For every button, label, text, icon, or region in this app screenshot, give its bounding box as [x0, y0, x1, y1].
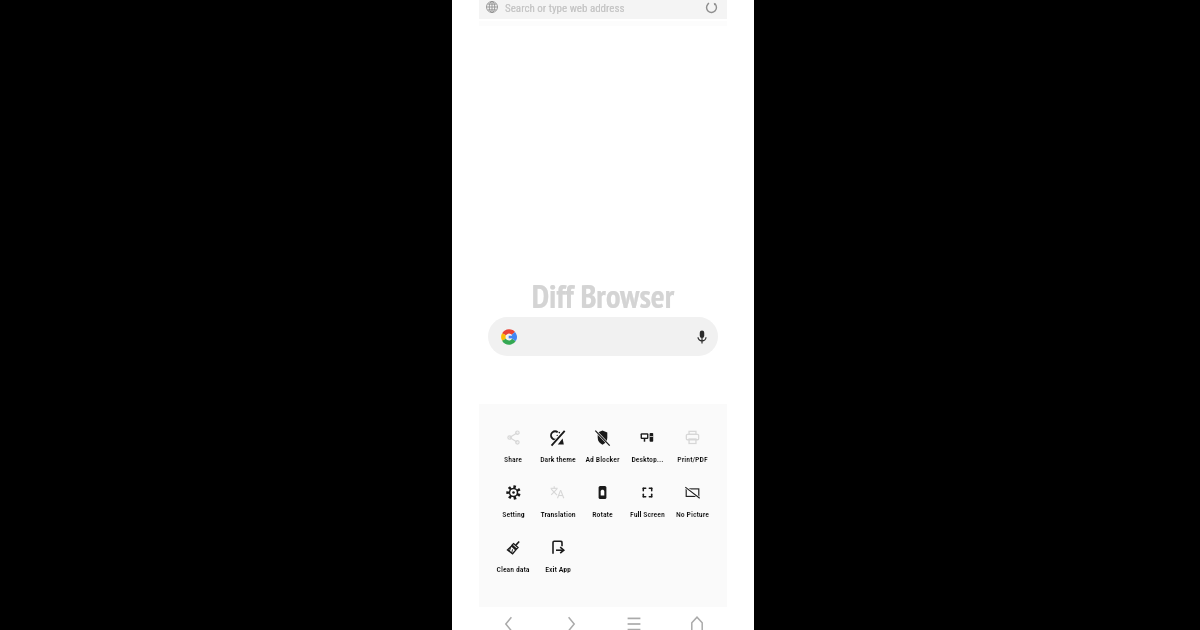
staticText: Share	[504, 455, 522, 464]
button[interactable]: Forward	[540, 606, 602, 630]
staticText: Diff Browser	[452, 275, 754, 317]
button[interactable]: Setting	[491, 485, 535, 519]
button[interactable]: Ad Blocker	[580, 430, 625, 464]
staticText: Dark theme	[540, 455, 576, 464]
staticText: Full Screen	[630, 510, 665, 519]
button[interactable]: Exit App	[535, 540, 580, 574]
button[interactable]: Full Screen	[625, 485, 670, 519]
button[interactable]: Search or type web address	[479, 0, 727, 19]
button[interactable]: Menu	[602, 606, 665, 630]
button[interactable]: Home	[665, 606, 728, 630]
staticText: Clean data	[496, 565, 530, 574]
button[interactable]: No Picture	[670, 485, 715, 519]
staticText: No Picture	[676, 510, 709, 519]
staticText: Translation	[540, 510, 576, 519]
button[interactable]: Print/PDF	[670, 430, 715, 464]
button[interactable]: Desktop...	[625, 430, 670, 464]
button[interactable]: Search with Google	[488, 317, 718, 356]
staticText: Exit App	[545, 565, 571, 574]
staticText: Ad Blocker	[585, 455, 620, 464]
button[interactable]: Clean data	[491, 540, 535, 574]
staticText: Setting	[502, 510, 525, 519]
button[interactable]: Share	[491, 430, 535, 464]
button[interactable]: Translation	[535, 485, 580, 519]
staticText: Rotate	[592, 510, 613, 519]
button[interactable]: Rotate	[580, 485, 625, 519]
staticText: Print/PDF	[677, 455, 708, 464]
button[interactable]: Dark theme	[535, 430, 580, 464]
button[interactable]: Back	[478, 606, 540, 630]
staticText: Search or type web address	[505, 2, 625, 15]
staticText: Desktop...	[631, 455, 664, 464]
